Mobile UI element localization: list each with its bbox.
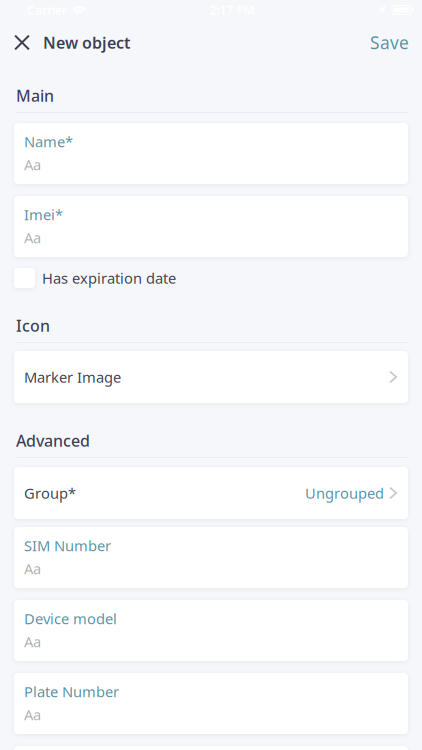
staticText: New object: [43, 32, 130, 53]
staticText: Device model: [24, 609, 117, 628]
staticText: Plate Number: [24, 682, 119, 701]
staticText: Group*: [24, 483, 76, 503]
button[interactable]: Close: [14, 34, 30, 50]
button[interactable]: Save: [370, 31, 409, 54]
button[interactable]: Marker Image: [14, 351, 408, 403]
button[interactable]: Has expiration date: [14, 268, 408, 288]
staticText: SIM Number: [24, 536, 111, 555]
staticText: Ungrouped: [305, 483, 384, 503]
staticText: Aa: [24, 228, 41, 247]
staticText: Aa: [24, 559, 41, 578]
staticText: Aa: [24, 155, 41, 174]
staticText: 2:17 PM: [209, 2, 254, 18]
button[interactable]: SIM Number: [14, 527, 408, 588]
staticText: Main: [16, 85, 54, 106]
button[interactable]: Group*: [14, 467, 408, 519]
button[interactable]: Name*: [14, 123, 408, 184]
staticText: Has expiration date: [42, 268, 176, 288]
staticText: Marker Image: [24, 367, 121, 387]
staticText: Aa: [24, 632, 41, 651]
button[interactable]: Imei*: [14, 196, 408, 257]
staticText: Advanced: [16, 430, 90, 451]
staticText: Aa: [24, 705, 41, 724]
staticText: Imei*: [24, 205, 63, 224]
staticText: Save: [370, 31, 409, 54]
button[interactable]: Device model: [14, 600, 408, 661]
staticText: Icon: [16, 315, 50, 336]
staticText: Name*: [24, 132, 73, 151]
button[interactable]: Plate Number: [14, 673, 408, 734]
staticText: Carrier: [27, 2, 67, 18]
